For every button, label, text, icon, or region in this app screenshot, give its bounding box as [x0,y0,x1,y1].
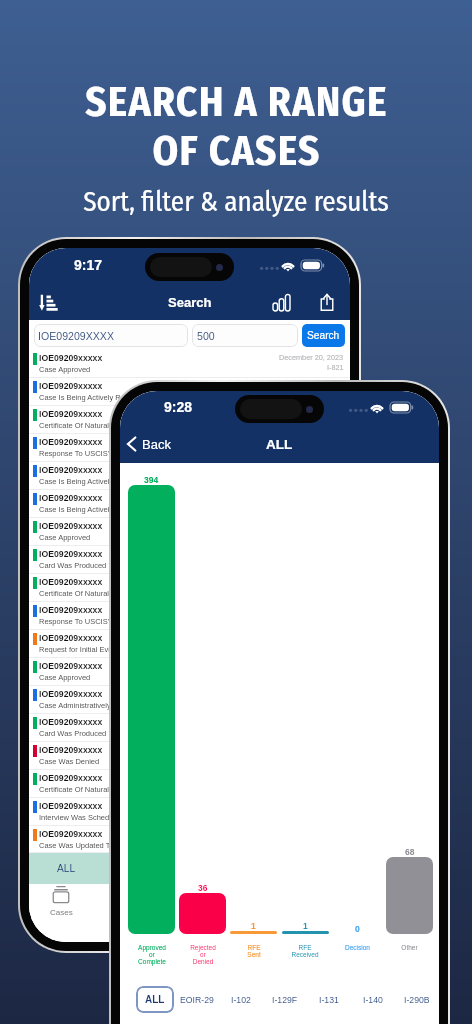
staticText: RFE Received [291,944,319,958]
staticText: I-102 [231,995,251,1005]
staticText: I-140 [363,995,383,1005]
staticText: Interview Was Sched [39,813,110,821]
staticText: IOE09209xxxxx [39,717,103,727]
button[interactable]: IOE09209xxxxx [29,350,350,378]
staticText: IOE09209XXXX [38,330,114,342]
button[interactable]: I-129F [263,986,307,1013]
button[interactable]: IOE09209xxxxx [29,434,350,462]
staticText: OF CASES [152,127,321,176]
staticText: ALL [266,437,293,452]
staticText: 1 [303,921,308,930]
staticText: Certificate Of Naturali [39,421,111,429]
staticText: IOE09209xxxxx [39,801,103,811]
button[interactable]: IOE09209XXXX [34,324,188,347]
button[interactable]: ALL [136,986,174,1013]
staticText: Certificate Of Natural [39,589,110,597]
staticText: 0 [355,924,360,933]
button[interactable]: IOE09209xxxxx [29,742,350,770]
staticText: I-131 [319,995,339,1005]
staticText: Back [142,437,171,452]
button[interactable]: 500 [192,324,298,347]
staticText: 9:17 [74,257,103,273]
staticText: I-129F [272,995,298,1005]
staticText: Rejected or Denied [190,944,216,965]
staticText: Case Approved [39,533,91,541]
staticText: Case Is Being Activel [39,477,110,485]
staticText: Case Administratively [39,701,111,709]
button[interactable]: IOE09209xxxxx [29,462,350,490]
staticText: Other [401,944,418,951]
staticText: IOE09209xxxxx [39,661,103,671]
button[interactable] [230,931,277,934]
staticText: 500 [197,330,215,342]
staticText: IOE09209xxxxx [39,493,103,503]
staticText: Sort, filter & analyze results [83,186,389,218]
button[interactable]: IOE09209xxxxx [29,518,350,546]
staticText: IOE09209xxxxx [39,437,103,447]
staticText: IOE09209xxxxx [39,605,103,615]
button[interactable]: I-140 [351,986,395,1013]
staticText: IOE09209xxxxx [39,521,103,531]
staticText: Case Was Updated T [39,841,111,849]
staticText: I-290B [404,995,430,1005]
button[interactable]: IOE09209xxxxx [29,658,350,686]
button[interactable]: IOE09209xxxxx [29,686,350,714]
staticText: RFE Sent [247,944,261,958]
button[interactable]: Statistics [266,287,296,317]
staticText: IOE09209xxxxx [39,745,103,755]
staticText: Response To USCIS' [39,449,110,457]
button[interactable]: Back [126,435,171,453]
button[interactable]: IOE09209xxxxx [29,378,350,406]
staticText: Cases [50,908,73,917]
staticText: IOE09209xxxxx [39,381,103,391]
staticText: EOIR-29 [180,995,214,1005]
staticText: Card Was Produced [39,561,109,569]
button[interactable]: IOE09209xxxxx [29,406,350,434]
staticText: IOE09209xxxxx [39,353,103,363]
button[interactable]: EOIR-29 [174,986,219,1013]
button[interactable]: I-102 [219,986,263,1013]
button[interactable]: IOE09209xxxxx [29,546,350,574]
staticText: ALL [57,863,76,874]
button[interactable]: IOE09209xxxxx [29,770,350,798]
staticText: SEARCH A RANGE [85,78,388,127]
staticText: Decision [345,944,370,951]
button[interactable]: IOE09209xxxxx [29,574,350,602]
staticText: Search [307,330,340,341]
staticText: 68 [405,847,415,856]
staticText: December 20, 2023 [279,353,344,361]
button[interactable]: IOE09209xxxxx [29,798,350,826]
staticText: Case Approved [39,673,91,681]
button[interactable]: IOE09209xxxxx [29,490,350,518]
staticText: IOE09209xxxxx [39,549,103,559]
button[interactable]: Search [302,324,345,347]
button[interactable] [179,893,226,934]
staticText: Request for Initial Evi [39,645,110,653]
staticText: IOE09209xxxxx [39,465,103,475]
staticText: 394 [144,475,159,484]
button[interactable]: IOE09209xxxxx [29,826,350,853]
button[interactable]: Share [312,287,342,317]
button[interactable]: Sort [32,287,62,317]
staticText: 1 [251,921,256,930]
staticText: 36 [198,883,208,892]
button[interactable]: ALL [29,853,350,884]
button[interactable]: Cases [47,885,75,917]
button[interactable] [282,931,329,934]
button[interactable]: IOE09209xxxxx [29,630,350,658]
button[interactable]: I-290B [395,986,439,1013]
staticText: IOE09209xxxxx [39,409,103,419]
button[interactable]: IOE09209xxxxx [29,714,350,742]
staticText: Search [168,295,212,310]
staticText: IOE09209xxxxx [39,633,103,643]
staticText: I-821 [327,363,344,371]
staticText: IOE09209xxxxx [39,577,103,587]
button[interactable] [128,485,175,934]
button[interactable]: I-131 [307,986,351,1013]
staticText: 9:28 [164,399,193,415]
button[interactable] [386,857,433,934]
staticText: IOE09209xxxxx [39,773,103,783]
staticText: IOE09209xxxxx [39,829,103,839]
staticText: Case Is Being Activel [39,505,110,513]
button[interactable]: IOE09209xxxxx [29,602,350,630]
